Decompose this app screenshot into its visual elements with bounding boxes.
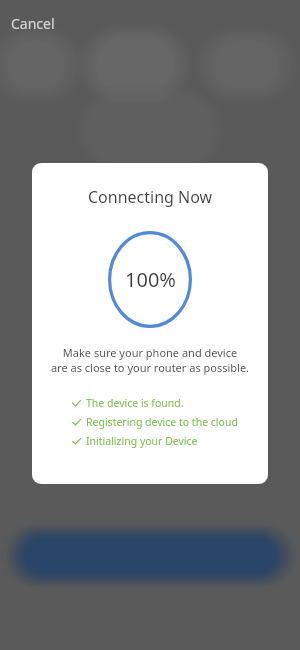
- staticText: Registering device to the cloud: [86, 415, 238, 429]
- staticText: Cancel: [11, 14, 55, 33]
- staticText: The device is found.: [86, 396, 184, 410]
- staticText: 100%: [125, 266, 176, 293]
- staticText: Connecting Now: [88, 186, 213, 208]
- button[interactable]: Cancel: [4, 10, 62, 37]
- staticText: Initializing your Device: [86, 434, 198, 448]
- staticText: Make sure your phone and device are as c…: [42, 345, 258, 375]
